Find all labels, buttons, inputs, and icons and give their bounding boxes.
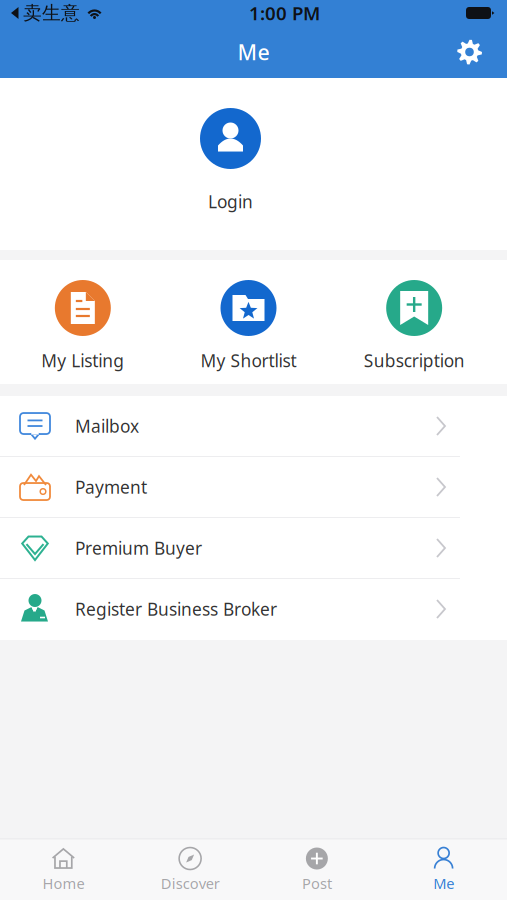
button[interactable]: My Listing — [0, 280, 166, 372]
button[interactable]: Register Business Broker — [0, 579, 507, 640]
staticText: Login — [208, 190, 253, 213]
button[interactable]: Login — [0, 78, 507, 250]
staticText: 卖生意 — [23, 1, 80, 24]
staticText: My Shortlist — [200, 349, 296, 372]
staticText: Post — [302, 873, 332, 893]
button[interactable]: Discover — [127, 847, 254, 893]
staticText: Me — [237, 38, 269, 66]
staticText: 1:00 PM — [249, 1, 320, 25]
staticText: Premium Buyer — [75, 536, 202, 559]
button[interactable]: Premium Buyer — [0, 518, 507, 579]
staticText: Register Business Broker — [75, 597, 277, 620]
button[interactable]: Mailbox — [0, 396, 507, 457]
staticText: My Listing — [41, 349, 124, 372]
button[interactable]: My Shortlist — [166, 280, 331, 372]
staticText: Home — [42, 873, 84, 893]
staticText: Payment — [75, 475, 147, 498]
button[interactable]: Me — [380, 847, 507, 893]
button[interactable]: Home — [0, 847, 127, 893]
button[interactable]: Settings — [445, 29, 507, 74]
button[interactable]: Subscription — [331, 280, 497, 372]
button[interactable]: Payment — [0, 457, 507, 518]
staticText: Me — [433, 873, 454, 893]
staticText: Subscription — [364, 349, 465, 372]
button[interactable]: Post — [253, 847, 380, 893]
staticText: Mailbox — [75, 414, 139, 437]
staticText: Discover — [161, 873, 220, 893]
